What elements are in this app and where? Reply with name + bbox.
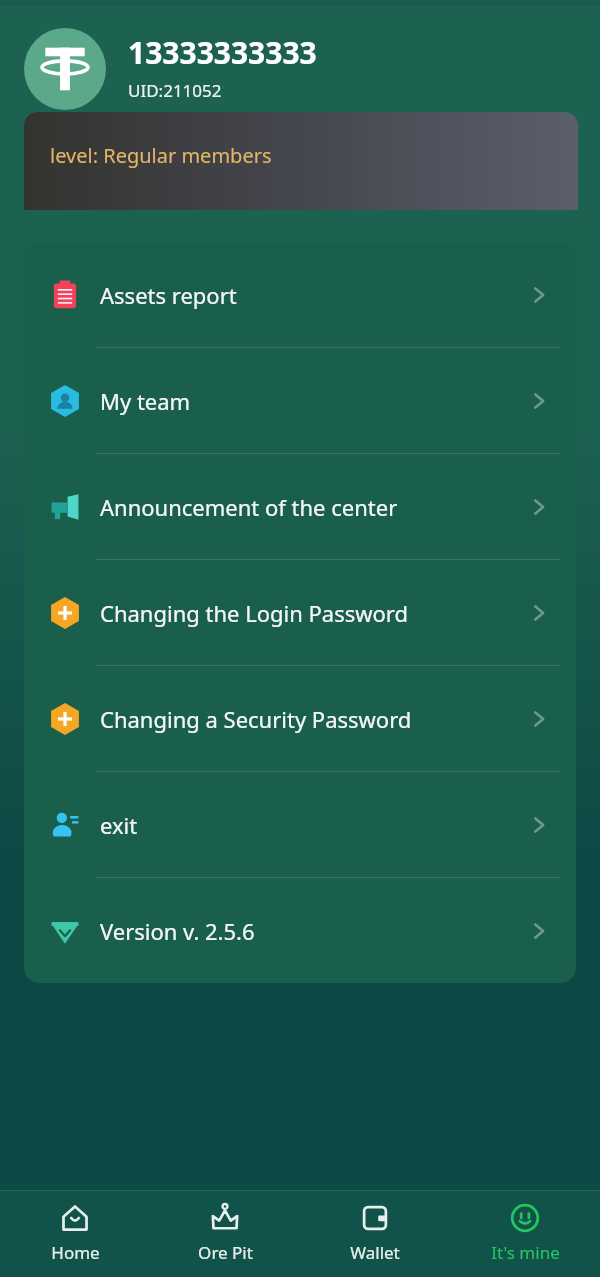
button[interactable]: Version v. 2.5.6: [24, 878, 576, 983]
button[interactable]: Changing the Login Password: [24, 560, 576, 665]
staticText: level: Regular members: [50, 142, 272, 169]
button[interactable]: It's mine: [450, 1191, 600, 1277]
staticText: My team: [100, 386, 526, 416]
staticText: Changing a Security Password: [100, 704, 526, 734]
staticText: Announcement of the center: [100, 492, 526, 522]
staticText: Version v. 2.5.6: [100, 916, 526, 946]
staticText: UID:211052: [128, 79, 222, 102]
staticText: Wallet: [350, 1241, 400, 1264]
staticText: It's mine: [491, 1241, 560, 1264]
button[interactable]: Assets report: [24, 242, 576, 347]
staticText: Ore Pit: [198, 1241, 253, 1264]
staticText: Changing the Login Password: [100, 598, 526, 628]
button[interactable]: My team: [24, 348, 576, 453]
staticText: Assets report: [100, 280, 526, 310]
button[interactable]: Home: [0, 1191, 150, 1277]
staticText: exit: [100, 810, 526, 840]
button[interactable]: level: Regular members: [24, 112, 578, 210]
button[interactable]: Announcement of the center: [24, 454, 576, 559]
button[interactable]: exit: [24, 772, 576, 877]
staticText: 13333333333: [128, 32, 317, 73]
button[interactable]: Wallet: [300, 1191, 450, 1277]
button[interactable]: Changing a Security Password: [24, 666, 576, 771]
button[interactable]: Ore Pit: [150, 1191, 300, 1277]
staticText: Home: [51, 1241, 100, 1264]
